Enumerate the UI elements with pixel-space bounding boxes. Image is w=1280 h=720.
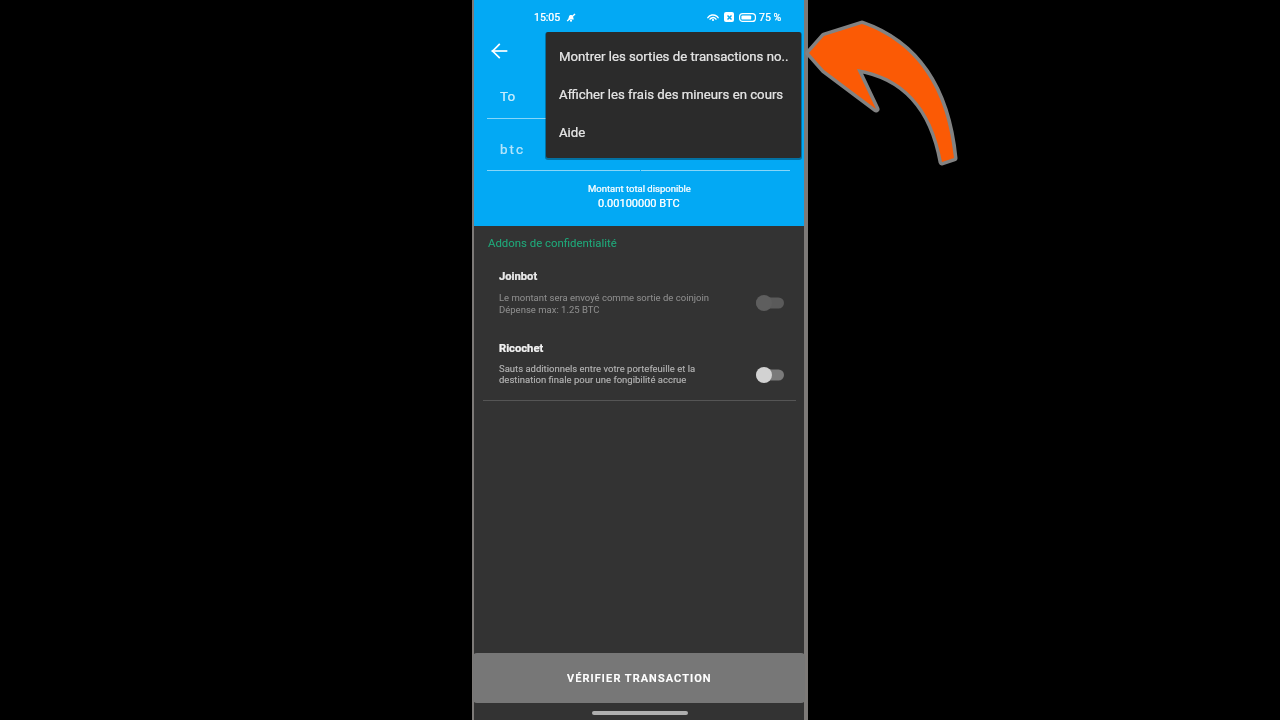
button[interactable]: Aide [546, 108, 801, 146]
staticText: 15:05 [534, 11, 561, 23]
button[interactable]: Montrer les sorties de transactions no.. [546, 32, 801, 70]
staticText: Le montant sera envoyé comme sortie de c… [499, 292, 709, 303]
staticText: VÉRIFIER TRANSACTION [567, 672, 712, 685]
staticText: Addons de confidentialité [488, 236, 617, 249]
staticText: Ricochet [499, 342, 544, 355]
staticText: 0.00100000 BTC [598, 197, 680, 210]
button[interactable]: Afficher les frais des mineurs en cours [546, 70, 801, 108]
staticText: btc [500, 141, 526, 157]
button[interactable]: Joinbot toggle [753, 291, 787, 315]
staticText: Montrer les sorties de transactions no.. [559, 49, 789, 64]
button[interactable]: VÉRIFIER TRANSACTION [473, 653, 805, 703]
staticText: Montant total disponible [588, 183, 691, 194]
button[interactable]: Ricochet toggle [753, 363, 787, 387]
staticText: 75 % [759, 11, 782, 23]
button[interactable]: Back [480, 36, 518, 65]
staticText: Sauts additionnels entre votre portefeui… [499, 363, 696, 374]
staticText: Joinbot [499, 270, 538, 283]
staticText: Aide [559, 125, 586, 140]
staticText: To [500, 88, 516, 104]
staticText: destination finale pour une fongibilité … [499, 374, 687, 385]
staticText: Dépense max: 1.25 BTC [499, 304, 600, 315]
staticText: Afficher les frais des mineurs en cours [559, 87, 784, 102]
